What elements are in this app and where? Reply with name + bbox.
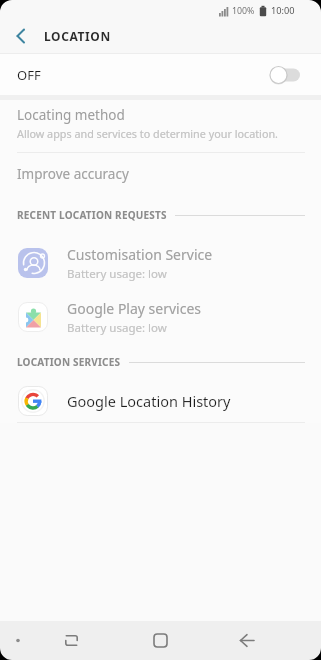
staticText: Locating method [17,106,125,124]
button[interactable] [8,24,32,48]
button[interactable]: Improve accuracy [0,153,321,194]
staticText: Battery usage: low [67,266,167,282]
button[interactable]: Locating method [0,100,321,152]
staticText: Google Play services [67,299,202,318]
staticText: OFF [17,66,41,84]
button[interactable]: Google Location History [0,380,321,422]
staticText: LOCATION [44,28,111,44]
staticText: RECENT LOCATION REQUESTS [17,208,167,222]
button[interactable] [142,621,178,660]
button[interactable] [54,621,90,660]
staticText: 10:00 [271,4,295,17]
button[interactable]: Customisation Service [0,236,321,290]
staticText: Customisation Service [67,245,213,264]
button[interactable] [229,621,265,660]
staticText: LOCATION SERVICES [17,355,121,369]
staticText: 100% [232,5,255,17]
staticText: Battery usage: low [67,320,167,336]
button[interactable]: OFF [0,54,321,95]
button[interactable]: Google Play services [0,290,321,344]
staticText: Improve accuracy [17,165,129,183]
staticText: Allow apps and services to determine you… [17,126,278,141]
staticText: Google Location History [67,391,231,411]
